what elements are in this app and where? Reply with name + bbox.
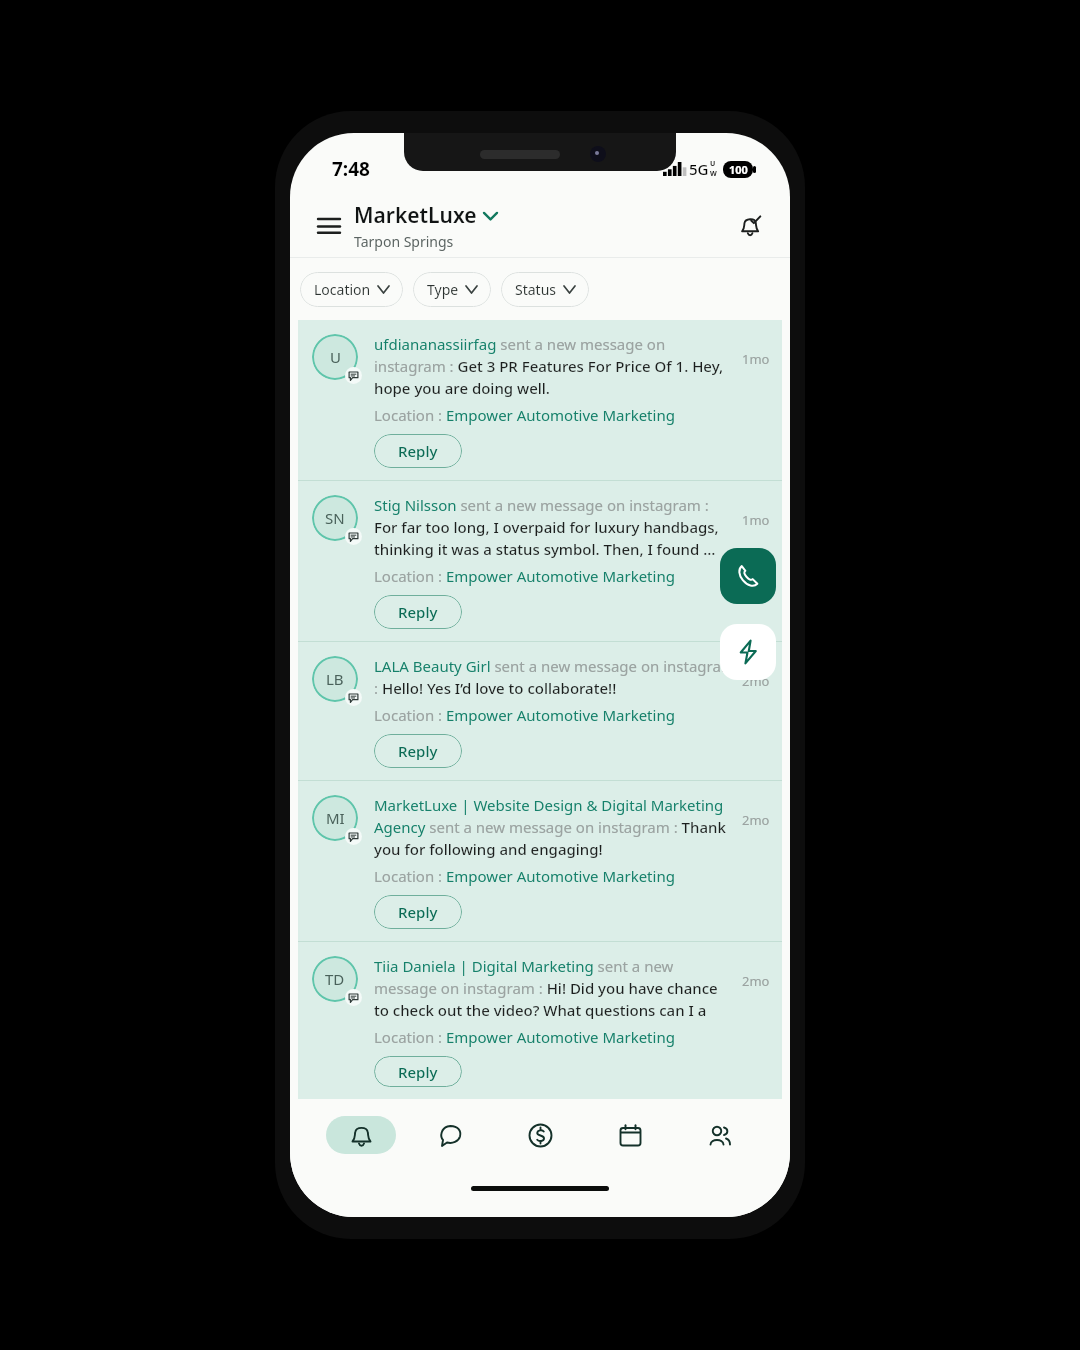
button[interactable]: Reply [374, 734, 462, 768]
button[interactable]: Contacts [684, 1116, 754, 1154]
staticText: ufdiananassiirfag sent a new message on … [374, 334, 736, 399]
staticText: 7:48 [332, 156, 370, 182]
button[interactable]: Location [300, 272, 403, 307]
staticText: Reply [398, 441, 438, 461]
staticText: Location : Empower Automotive Marketing [374, 405, 675, 425]
staticText: Location : Empower Automotive Marketing [374, 705, 675, 725]
staticText: MarketLuxe [354, 201, 477, 230]
button[interactable]: MI [298, 781, 782, 941]
staticText: TD [325, 969, 345, 989]
staticText: SN [325, 508, 345, 528]
staticText: LB [326, 669, 344, 689]
staticText: 5G [689, 159, 709, 179]
staticText: 2mo [742, 811, 770, 829]
button[interactable]: Menu [308, 205, 350, 247]
staticText: Stig Nilsson sent a new message on insta… [374, 495, 736, 560]
button[interactable]: Reply [374, 595, 462, 629]
staticText: 2mo [742, 972, 770, 990]
staticText: U [330, 347, 341, 367]
button[interactable]: MarketLuxe [354, 201, 728, 251]
staticText: Tiia Daniela | Digital Marketing sent a … [374, 956, 736, 1021]
button[interactable]: Notifications [326, 1116, 396, 1154]
button[interactable]: Notifications [728, 204, 772, 248]
staticText: Tarpon Springs [354, 232, 454, 251]
staticText: W [710, 169, 717, 179]
staticText: Location : Empower Automotive Marketing [374, 866, 675, 886]
staticText: LALA Beauty Girl sent a new message on i… [374, 656, 736, 699]
button[interactable]: Type [413, 272, 491, 307]
staticText: Reply [398, 902, 438, 922]
button[interactable]: U [298, 320, 782, 480]
staticText: Reply [398, 1062, 438, 1082]
staticText: Type [427, 280, 459, 299]
button[interactable]: Reply [374, 1056, 462, 1087]
button[interactable]: Reply [374, 434, 462, 468]
button[interactable]: TD [298, 942, 782, 1099]
staticText: Location : Empower Automotive Marketing [374, 566, 675, 586]
button[interactable]: SN [298, 481, 782, 641]
staticText: MarketLuxe | Website Design & Digital Ma… [374, 795, 736, 860]
staticText: 1mo [742, 511, 770, 529]
button[interactable]: Reply [374, 895, 462, 929]
button[interactable]: Status [501, 272, 589, 307]
staticText: MI [326, 808, 345, 828]
staticText: U [710, 159, 716, 169]
staticText: Location [314, 280, 371, 299]
staticText: 2mo [742, 672, 770, 690]
staticText: Reply [398, 741, 438, 761]
staticText: 1mo [742, 350, 770, 368]
button[interactable]: Calendar [595, 1116, 665, 1154]
staticText: 100 [729, 162, 748, 177]
staticText: Location : Empower Automotive Marketing [374, 1027, 675, 1047]
button[interactable]: Call [720, 548, 776, 604]
button[interactable]: Quick actions [720, 624, 776, 680]
staticText: Reply [398, 602, 438, 622]
staticText: Status [515, 280, 557, 299]
button[interactable]: LB [298, 642, 782, 780]
button[interactable]: Payments [505, 1116, 575, 1154]
button[interactable]: Messages [415, 1116, 485, 1154]
